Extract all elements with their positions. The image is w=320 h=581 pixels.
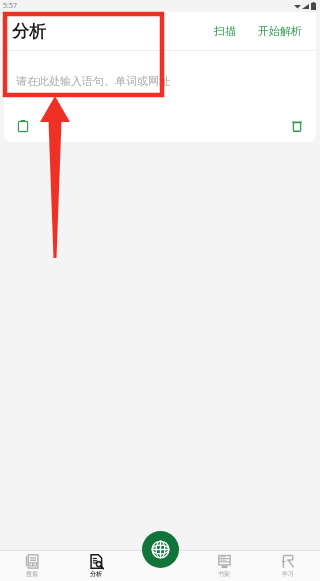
button[interactable]: 分析 [64,550,128,581]
button[interactable]: 学习 [256,550,320,581]
button[interactable]: Paste from clipboard [12,115,34,137]
staticText: 书架 [218,570,230,578]
staticText: 搜索 [26,570,38,578]
staticText: 分析 [12,21,46,42]
staticText: 扫描 [214,24,236,38]
staticText: 请在此处输入语句、单词或网址 [16,74,170,88]
button[interactable]: 扫描 [208,20,242,42]
button[interactable]: 书架 [192,550,256,581]
staticText: 开始解析 [258,24,302,38]
button[interactable]: 搜索 [0,550,64,581]
staticText: 学习 [282,570,294,578]
staticText: 分析 [90,570,102,578]
staticText: 5:57 [3,1,17,11]
button[interactable]: Browse web [142,531,179,568]
button[interactable]: 开始解析 [252,20,308,42]
button[interactable]: Clear text [286,115,308,137]
